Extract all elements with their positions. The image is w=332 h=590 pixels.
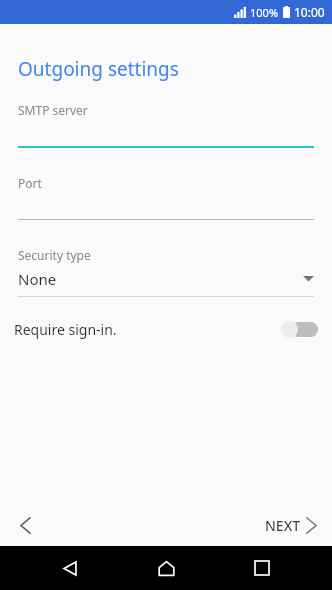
staticText: 100%	[250, 5, 279, 20]
button[interactable]: Recent apps	[236, 546, 288, 590]
staticText: Security type	[18, 247, 91, 263]
staticText: 10:00	[294, 4, 325, 20]
staticText: Port	[18, 175, 42, 191]
staticText: NEXT	[265, 516, 301, 535]
button[interactable]: NEXT	[257, 508, 324, 543]
button[interactable]: Require sign-in.	[0, 311, 332, 347]
staticText: Outgoing settings	[18, 56, 179, 82]
button[interactable]: Home	[140, 546, 192, 590]
staticText: Require sign-in.	[14, 320, 281, 339]
other: Open security type menu	[303, 276, 314, 283]
staticText: SMTP server	[18, 102, 88, 118]
button[interactable]: Port	[0, 175, 332, 220]
staticText: None	[18, 269, 303, 289]
button[interactable]: Previous	[8, 506, 42, 544]
button[interactable]: SMTP server	[0, 102, 332, 148]
button[interactable]: Back	[44, 546, 96, 590]
button[interactable]: Security type	[0, 247, 332, 297]
